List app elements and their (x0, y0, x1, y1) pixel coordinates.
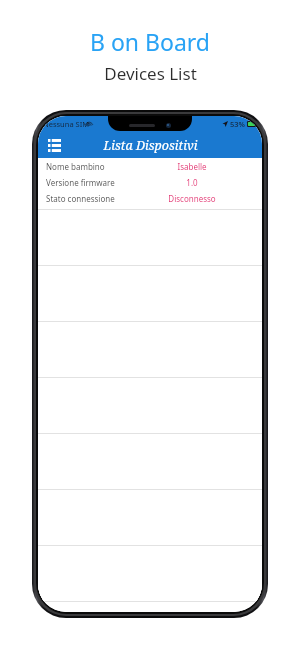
staticText: Isabelle (177, 161, 207, 172)
staticText: 1.0 (186, 177, 198, 188)
button[interactable]: Open navigation menu (44, 135, 64, 155)
staticText: Nome bambino (46, 161, 138, 172)
button[interactable]: Nome bambino (38, 158, 262, 174)
button[interactable]: Versione firmware (38, 174, 262, 190)
staticText: Lista Dispositivi (103, 137, 198, 154)
staticText: 53% (230, 119, 245, 129)
staticText: Stato connessione (46, 193, 138, 204)
button[interactable]: Stato connessione (38, 190, 262, 206)
staticText: B on Board (90, 26, 210, 57)
staticText: Versione firmware (46, 177, 138, 188)
button[interactable] (38, 546, 262, 601)
staticText: Devices List (104, 62, 197, 85)
staticText: Nessuna SIM (43, 119, 90, 129)
staticText: Disconnesso (168, 193, 216, 204)
